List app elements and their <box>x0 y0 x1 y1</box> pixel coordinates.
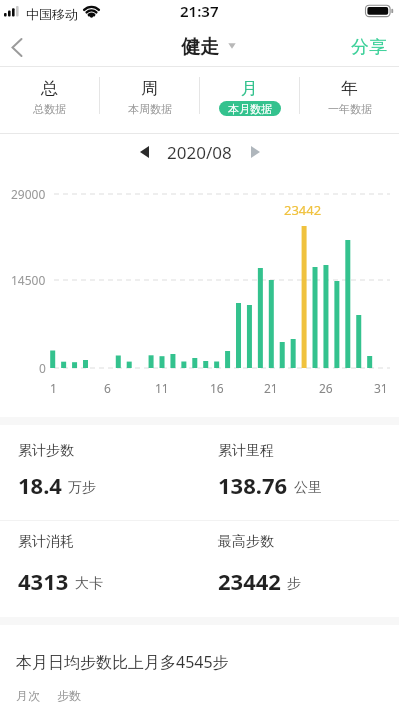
button[interactable]: 月 <box>200 67 299 133</box>
button[interactable] <box>130 134 158 170</box>
staticText: 11 <box>155 380 169 396</box>
staticText: 大卡 <box>75 575 103 593</box>
staticText: 步 <box>287 575 301 593</box>
button[interactable] <box>0 28 38 66</box>
staticText: 总数据 <box>33 102 66 116</box>
staticText: 18.4 <box>18 470 62 500</box>
staticText: 健走 <box>181 35 219 59</box>
button[interactable]: 周 <box>100 67 199 133</box>
staticText: 年 <box>341 78 358 99</box>
staticText: 4313 <box>18 566 69 596</box>
staticText: 周 <box>141 78 158 99</box>
staticText: 中国移动 <box>26 6 78 22</box>
staticText: 26 <box>319 380 333 396</box>
staticText: 累计消耗 <box>18 533 74 551</box>
staticText: 本月日均步数比上月多4545步 <box>16 651 229 673</box>
button[interactable] <box>241 134 269 170</box>
staticText: 21:37 <box>180 1 219 21</box>
staticText: 万步 <box>68 479 96 497</box>
button[interactable]: 年 <box>300 67 399 133</box>
staticText: 总 <box>41 78 58 99</box>
button[interactable]: 健走 <box>0 28 399 66</box>
staticText: 23442 <box>218 566 281 596</box>
staticText: 16 <box>210 380 224 396</box>
staticText: 23442 <box>284 201 322 219</box>
staticText: 月次 <box>16 688 40 703</box>
staticText: 最高步数 <box>218 533 274 551</box>
staticText: 一年数据 <box>328 102 372 116</box>
staticText: 本月数据 <box>228 102 272 116</box>
staticText: 累计步数 <box>18 442 74 460</box>
staticText: 累计里程 <box>218 442 274 460</box>
staticText: 1 <box>50 380 57 396</box>
staticText: 138.76 <box>218 470 288 500</box>
staticText: 分享 <box>351 36 387 59</box>
staticText: 月 <box>241 78 258 99</box>
staticText: 31 <box>374 380 388 396</box>
staticText: 0 <box>39 360 46 376</box>
staticText: 6 <box>104 380 111 396</box>
staticText: 公里 <box>294 479 322 497</box>
staticText: 2020/08 <box>167 141 232 164</box>
staticText: 本周数据 <box>128 102 172 116</box>
staticText: 步数 <box>57 688 81 703</box>
staticText: 14500 <box>11 272 46 288</box>
button[interactable]: 总 <box>0 67 99 133</box>
staticText: 21 <box>264 380 278 396</box>
staticText: 29000 <box>11 186 46 202</box>
button[interactable]: 分享 <box>351 28 399 66</box>
